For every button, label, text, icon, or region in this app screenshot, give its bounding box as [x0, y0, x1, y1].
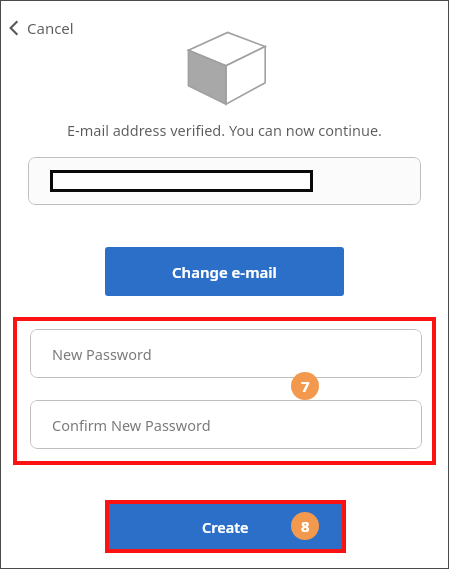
staticText: 7 [301, 376, 310, 396]
staticText: New Password [52, 344, 152, 364]
staticText: 8 [301, 516, 310, 536]
button[interactable]: Confirm New Password [30, 400, 422, 449]
staticText: E-mail address verified. You can now con… [0, 120, 449, 140]
button[interactable] [28, 157, 421, 205]
button[interactable]: Cancel [4, 16, 78, 40]
staticText: Change e-mail [172, 262, 277, 282]
button[interactable]: New Password [30, 329, 422, 378]
button[interactable]: Change e-mail [105, 247, 344, 296]
staticText: Cancel [27, 18, 74, 38]
staticText: Create [202, 517, 249, 537]
button[interactable]: Create [109, 504, 342, 549]
staticText: Confirm New Password [52, 415, 211, 435]
other: Box illustration [186, 31, 266, 105]
